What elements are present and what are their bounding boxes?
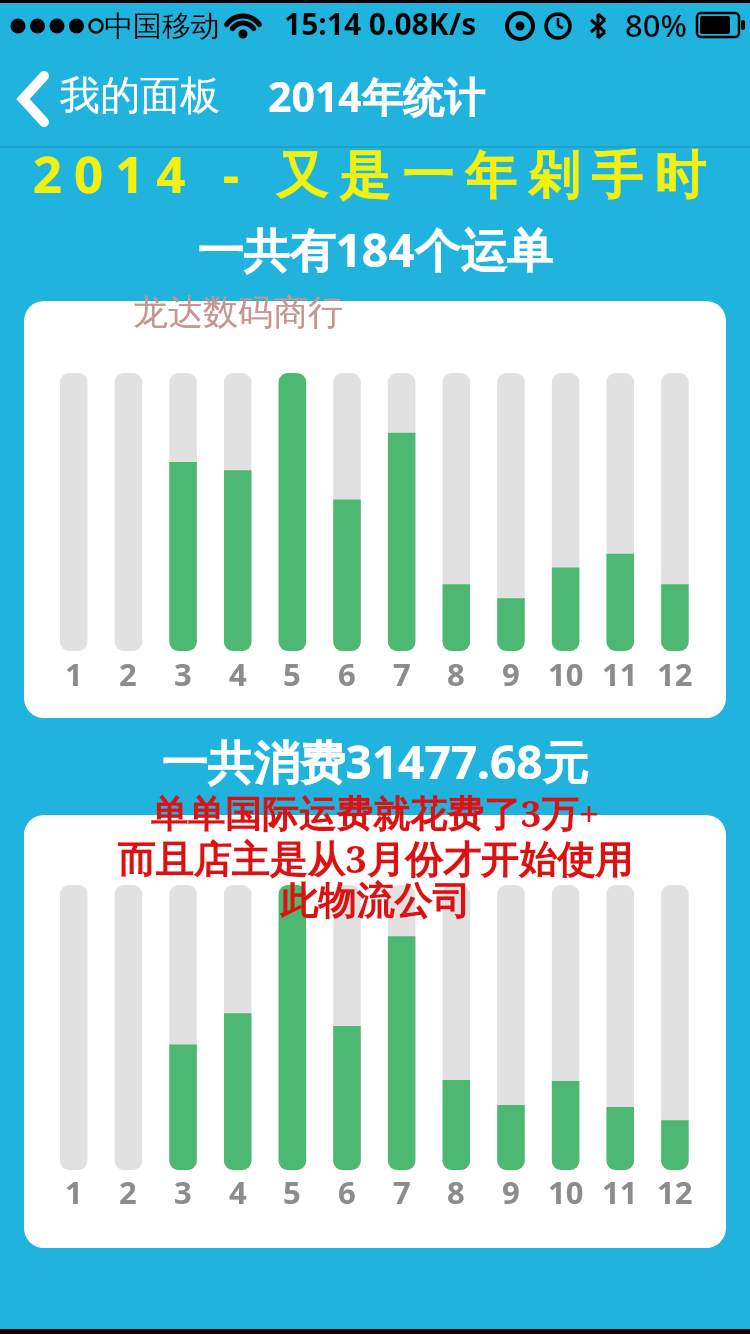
staticText: 4 xyxy=(229,1171,247,1213)
staticText: 一共消费31477.68元 xyxy=(0,730,750,793)
button[interactable]: 1 xyxy=(24,301,726,718)
button[interactable]: 我的面板 xyxy=(10,58,235,142)
staticText: 7 xyxy=(393,653,411,695)
staticText: 一共有184个运单 xyxy=(0,218,750,281)
staticText: 6 xyxy=(338,1171,356,1213)
staticText: 2 xyxy=(119,653,137,695)
staticText: 此物流公司 xyxy=(0,877,750,925)
staticText: 而且店主是从3月份才开始使用 xyxy=(0,832,750,884)
staticText: 8 xyxy=(447,1171,465,1213)
staticText: 80% xyxy=(625,4,687,46)
staticText: 11 xyxy=(602,653,638,695)
staticText: 4 xyxy=(229,653,247,695)
staticText: 7 xyxy=(393,1171,411,1213)
staticText: 1 xyxy=(65,653,83,695)
staticText: 11 xyxy=(602,1171,638,1213)
staticText: 单单国际运费就花费了3万+ xyxy=(0,787,750,838)
staticText: 5 xyxy=(283,1171,301,1213)
staticText: 15:14 0.08K/s xyxy=(284,3,477,44)
staticText: 9 xyxy=(502,653,520,695)
staticText: 5 xyxy=(283,653,301,695)
staticText: 12 xyxy=(657,1171,693,1213)
staticText: 3 xyxy=(174,653,192,695)
staticText: 我的面板 xyxy=(60,70,220,120)
staticText: 2014年统计 xyxy=(268,68,485,124)
staticText: 2 xyxy=(119,1171,137,1213)
staticText: 1 xyxy=(65,1171,83,1213)
staticText: 中国移动 xyxy=(104,8,220,45)
staticText: 8 xyxy=(447,653,465,695)
staticText: 6 xyxy=(338,653,356,695)
staticText: 12 xyxy=(657,653,693,695)
staticText: 10 xyxy=(548,653,584,695)
button[interactable]: 1 xyxy=(24,815,726,1248)
staticText: 2014 - 又是一年剁手时 xyxy=(0,138,750,208)
staticText: 3 xyxy=(174,1171,192,1213)
staticText: 9 xyxy=(502,1171,520,1213)
staticText: 10 xyxy=(548,1171,584,1213)
staticText: 龙达数码商行 xyxy=(133,290,343,334)
